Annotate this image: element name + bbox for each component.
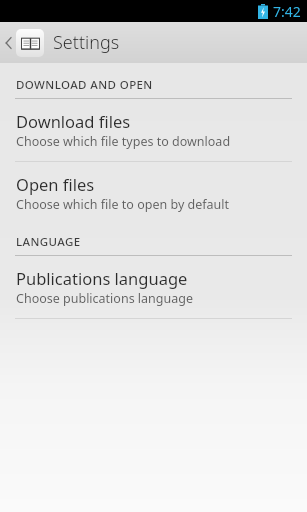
button[interactable]: Navigate up [0, 22, 307, 63]
staticText: Choose which file to open by default [16, 196, 230, 213]
button[interactable]: Open files [0, 162, 307, 224]
button[interactable]: Download files [0, 99, 307, 161]
staticText: DOWNLOAD AND OPEN [16, 77, 153, 93]
staticText: Open files [16, 173, 95, 195]
staticText: Choose which file types to download [16, 133, 231, 150]
staticText: Choose publications language [16, 290, 193, 307]
staticText: Download files [16, 110, 131, 132]
staticText: Publications language [16, 267, 188, 289]
staticText: Settings [53, 30, 120, 55]
button[interactable]: Publications language [0, 256, 307, 318]
staticText: LANGUAGE [16, 234, 81, 250]
other: Battery charging [258, 4, 268, 19]
staticText: 7:42 [273, 2, 301, 21]
